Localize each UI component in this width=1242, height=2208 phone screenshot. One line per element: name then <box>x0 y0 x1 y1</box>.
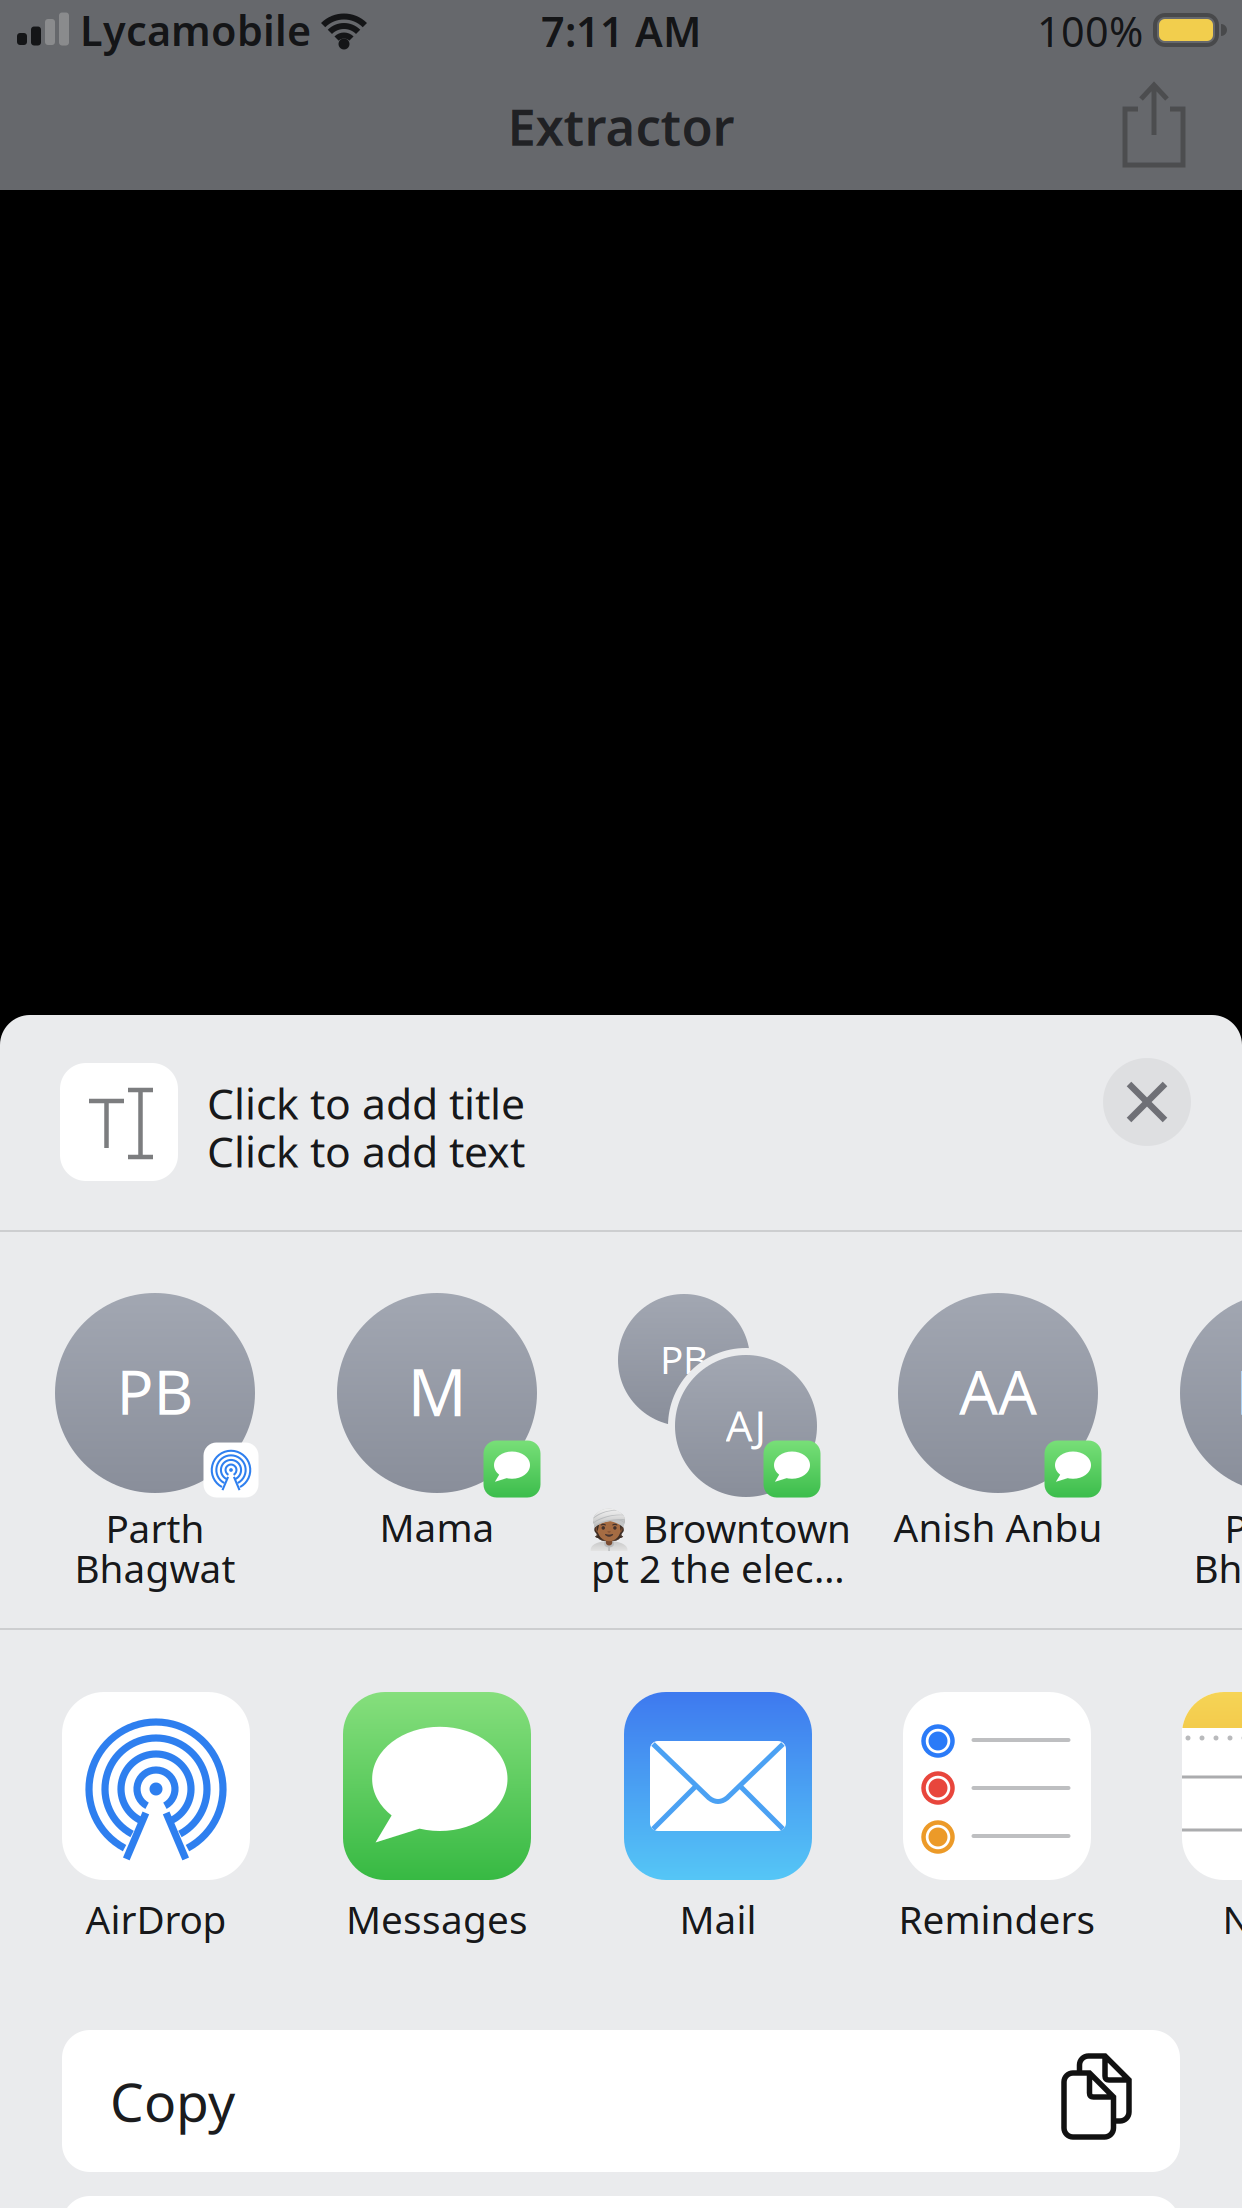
button[interactable]: PB <box>608 1290 828 1590</box>
staticText: Parth <box>1224 1502 1242 1554</box>
staticText: Anish Anbu <box>893 1501 1102 1553</box>
button[interactable]: PB <box>45 1290 265 1590</box>
staticText: Parth <box>105 1502 204 1554</box>
button[interactable]: M <box>327 1290 547 1590</box>
staticText: Mail <box>679 1893 756 1945</box>
staticText: Lycamobile <box>80 3 311 57</box>
staticText: Mama <box>379 1501 494 1553</box>
button[interactable]: Notes <box>1166 1692 1242 1952</box>
button[interactable]: Share <box>1096 82 1212 198</box>
staticText: Bhagwat <box>74 1542 235 1594</box>
staticText: Click to add title <box>207 1075 525 1131</box>
staticText: 7:11 AM <box>541 4 701 58</box>
staticText: PB <box>116 1350 193 1432</box>
button[interactable]: Messages <box>327 1692 547 1952</box>
staticText: AirDrop <box>85 1893 226 1945</box>
staticText: 👳🏾 Browntown <box>585 1502 851 1554</box>
staticText: Reminders <box>898 1893 1095 1945</box>
staticText: Copy <box>110 2066 235 2136</box>
staticText: Extractor <box>507 92 734 160</box>
staticText: AA <box>959 1350 1037 1432</box>
staticText: pt 2 the elec… <box>591 1542 845 1594</box>
staticText: Bhagwat <box>1193 1542 1242 1594</box>
staticText: Click to add text <box>207 1123 525 1179</box>
button[interactable]: Copy <box>62 2030 1180 2172</box>
button[interactable]: AA <box>888 1290 1108 1590</box>
button[interactable]: Close <box>1103 1058 1191 1146</box>
button[interactable]: Reminders <box>887 1692 1107 1952</box>
staticText: Messages <box>346 1893 528 1945</box>
staticText: PB <box>1235 1350 1242 1432</box>
staticText: Notes <box>1222 1893 1242 1945</box>
staticText: 100% <box>1037 4 1143 58</box>
button[interactable]: AirDrop <box>46 1692 266 1952</box>
button[interactable]: Mail <box>608 1692 828 1952</box>
staticText: PB <box>660 1333 708 1385</box>
button[interactable]: PB <box>1170 1290 1242 1590</box>
staticText: AJ <box>725 1397 766 1453</box>
staticText: M <box>407 1348 466 1434</box>
